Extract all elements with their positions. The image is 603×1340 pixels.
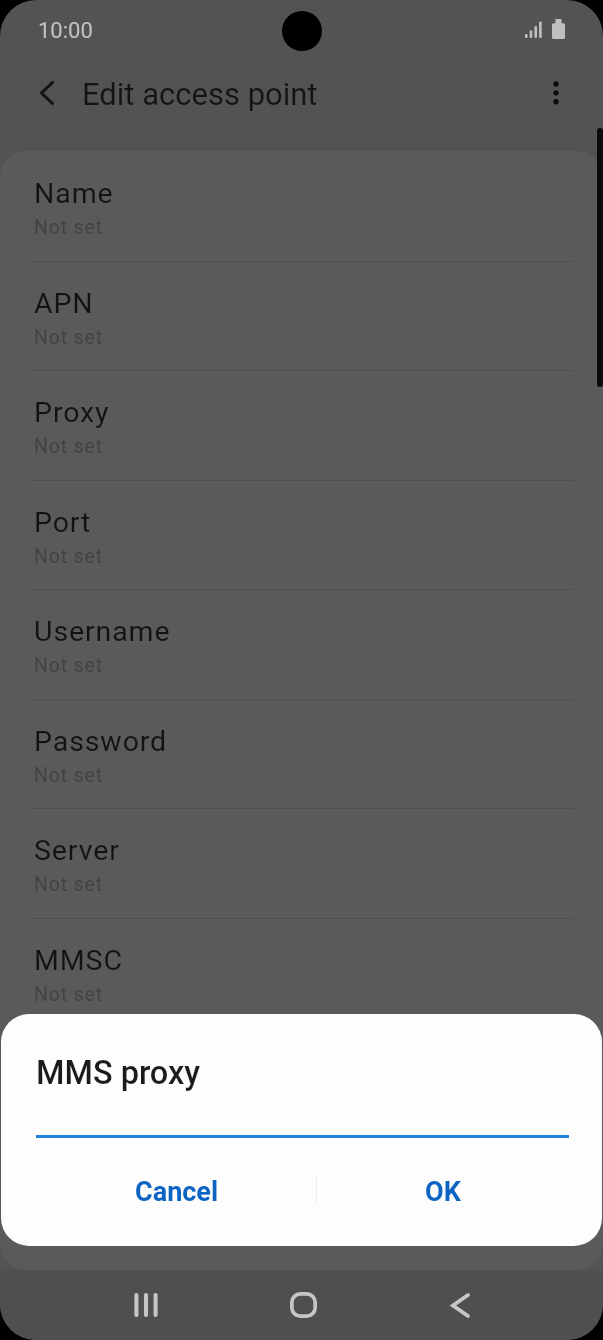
staticText: Name (34, 177, 114, 210)
staticText: Port (34, 506, 92, 539)
staticText: Not set (34, 654, 103, 677)
button[interactable]: Password (0, 699, 603, 809)
staticText: MMSC (34, 944, 123, 977)
staticText: MMS proxy (36, 1054, 201, 1092)
button[interactable]: Port (0, 480, 603, 590)
button[interactable]: Navigate up (20, 66, 74, 120)
staticText: Not set (34, 873, 103, 896)
button[interactable]: MMSC (0, 918, 603, 1028)
staticText: Username (34, 615, 171, 648)
button[interactable]: Back (381, 1270, 539, 1340)
button[interactable]: Name (0, 151, 603, 261)
button[interactable]: APN (0, 261, 603, 371)
button[interactable]: Cancel (107, 1164, 247, 1220)
staticText: Server (34, 834, 120, 867)
staticText: Proxy (34, 396, 110, 429)
staticText: Not set (34, 764, 103, 787)
staticText: Cancel (135, 1176, 219, 1208)
staticText: Not set (34, 545, 103, 568)
button[interactable]: Recent apps (67, 1270, 225, 1340)
staticText: Edit access point (82, 76, 318, 112)
staticText: Password (34, 725, 168, 758)
button[interactable]: Home (224, 1270, 382, 1340)
staticText: Not set (34, 326, 103, 349)
staticText: OK (425, 1176, 461, 1208)
button[interactable]: Proxy (0, 370, 603, 480)
button[interactable]: More options (529, 66, 583, 120)
staticText: APN (34, 287, 94, 320)
staticText: Not set (34, 983, 103, 1006)
button[interactable]: Server (0, 808, 603, 918)
staticText: Not set (34, 435, 103, 458)
button[interactable]: OK (383, 1164, 503, 1220)
staticText: 10:00 (38, 18, 93, 44)
button[interactable]: Username (0, 589, 603, 699)
staticText: Not set (34, 216, 103, 239)
